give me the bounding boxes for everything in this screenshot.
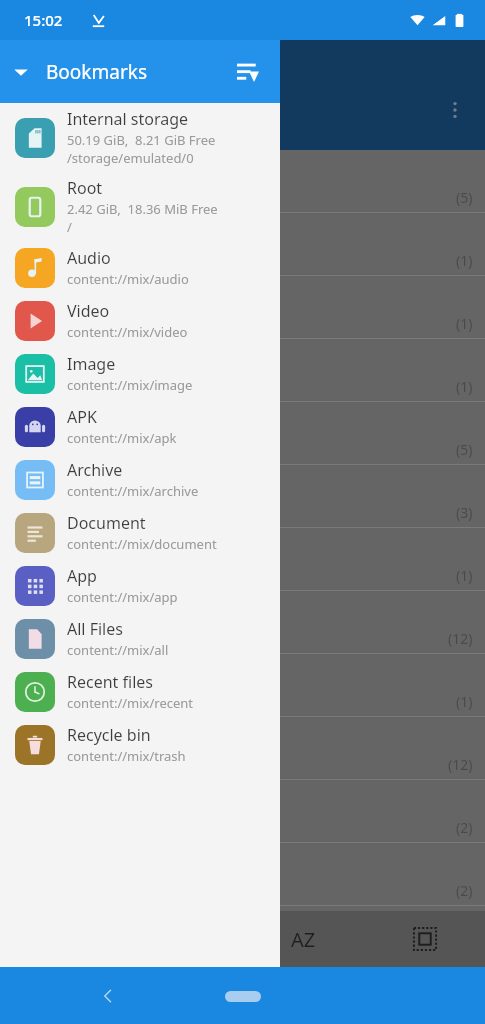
staticText: Root [67,177,103,199]
staticText: Document [67,512,146,534]
staticText: content://mix/trash [67,747,186,765]
staticText: Video [67,300,110,322]
button[interactable]: Back [85,973,131,1019]
staticText: (5) [456,188,473,207]
button[interactable]: App [0,559,280,612]
staticText: (2) [456,818,473,837]
staticText: All Files [67,618,123,640]
button[interactable]: (5) [0,150,485,213]
button[interactable]: (12) [0,591,485,654]
staticText: (1) [456,566,473,585]
button[interactable]: (3) [0,465,485,528]
button[interactable]: Archive [0,453,280,506]
button[interactable]: Video [0,294,280,347]
staticText: /storage/emulated/0 [67,149,194,167]
staticText: (2) [456,881,473,900]
staticText: Archive [67,459,123,481]
staticText: content://mix/document [67,535,217,553]
button[interactable]: Internal storage [0,103,280,172]
staticText: APK [67,406,97,428]
button[interactable]: Recent files [0,665,280,718]
button[interactable]: Bookmarks [0,40,280,103]
staticText: App [67,565,97,587]
staticText: (1) [456,314,473,333]
button[interactable]: (12) [0,717,485,780]
button[interactable]: AZ [243,911,364,967]
button[interactable]: Root [0,172,280,241]
button[interactable]: Image [0,347,280,400]
button[interactable]: (2) [0,843,485,906]
staticText: (1) [456,251,473,270]
staticText: content://mix/archive [67,482,199,500]
button[interactable]: All Files [0,612,280,665]
button[interactable]: Document [0,506,280,559]
button[interactable]: Home [220,981,266,1011]
button[interactable]: (1) [0,654,485,717]
staticText: (3) [456,503,473,522]
staticText: content://mix/app [67,588,178,606]
button[interactable]: Audio [0,241,280,294]
staticText: content://mix/apk [67,429,177,447]
staticText: (12) [448,629,473,648]
button[interactable]: (2) [0,780,485,843]
staticText: content://mix/video [67,323,188,341]
staticText: Bookmarks [46,59,148,85]
staticText: content://mix/all [67,641,169,659]
staticText: Recycle bin [67,724,151,746]
button[interactable]: (1) [0,339,485,402]
staticText: 15:02 [24,10,63,30]
button[interactable]: Select all [364,911,485,967]
staticText: (1) [456,377,473,396]
button[interactable]: More options [434,89,476,131]
staticText: 2.42 GiB, 18.36 MiB Free [67,200,218,218]
button[interactable]: (5) [0,402,485,465]
button[interactable]: Sort [224,48,272,96]
button[interactable]: Recycle bin [0,718,280,771]
staticText: (12) [448,755,473,774]
staticText: Recent files [67,671,153,693]
staticText: 50.19 GiB, 8.21 GiB Free [67,131,216,149]
staticText: / [67,218,72,236]
staticText: content://mix/image [67,376,193,394]
button[interactable]: (1) [0,276,485,339]
staticText: Audio [67,247,111,269]
staticText: Image [67,353,116,375]
staticText: Internal storage [67,108,189,130]
staticText: AZ [291,926,316,953]
button[interactable]: (1) [0,213,485,276]
staticText: content://mix/audio [67,270,189,288]
staticText: (5) [456,440,473,459]
button[interactable]: (1) [0,528,485,591]
staticText: (1) [456,692,473,711]
button[interactable]: APK [0,400,280,453]
staticText: content://mix/recent [67,694,194,712]
